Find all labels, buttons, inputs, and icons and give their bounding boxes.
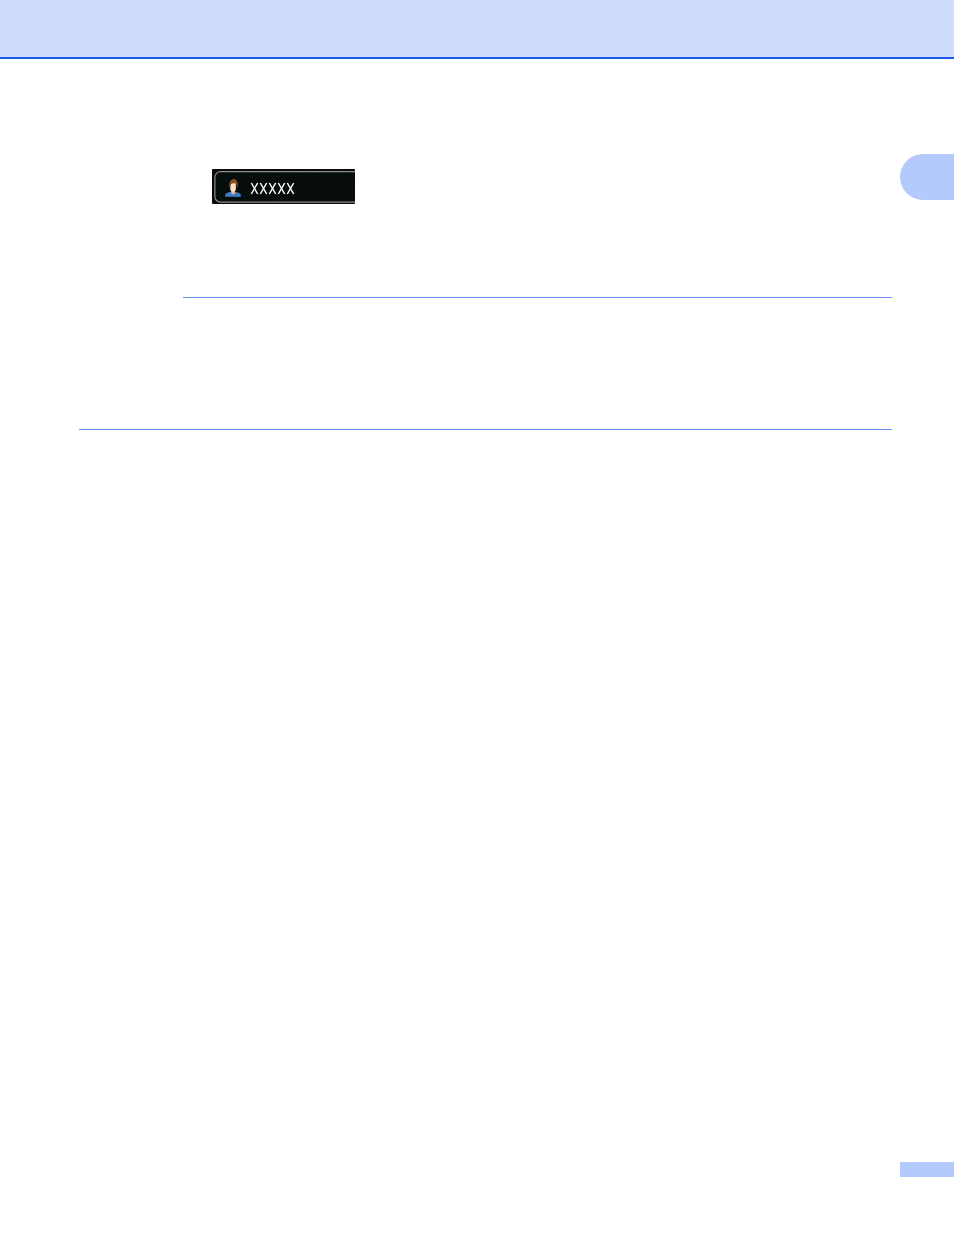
other: XXXXX <box>250 183 295 194</box>
button[interactable]: XXXXX <box>212 169 355 204</box>
button[interactable]: Chapter tab <box>900 154 954 200</box>
